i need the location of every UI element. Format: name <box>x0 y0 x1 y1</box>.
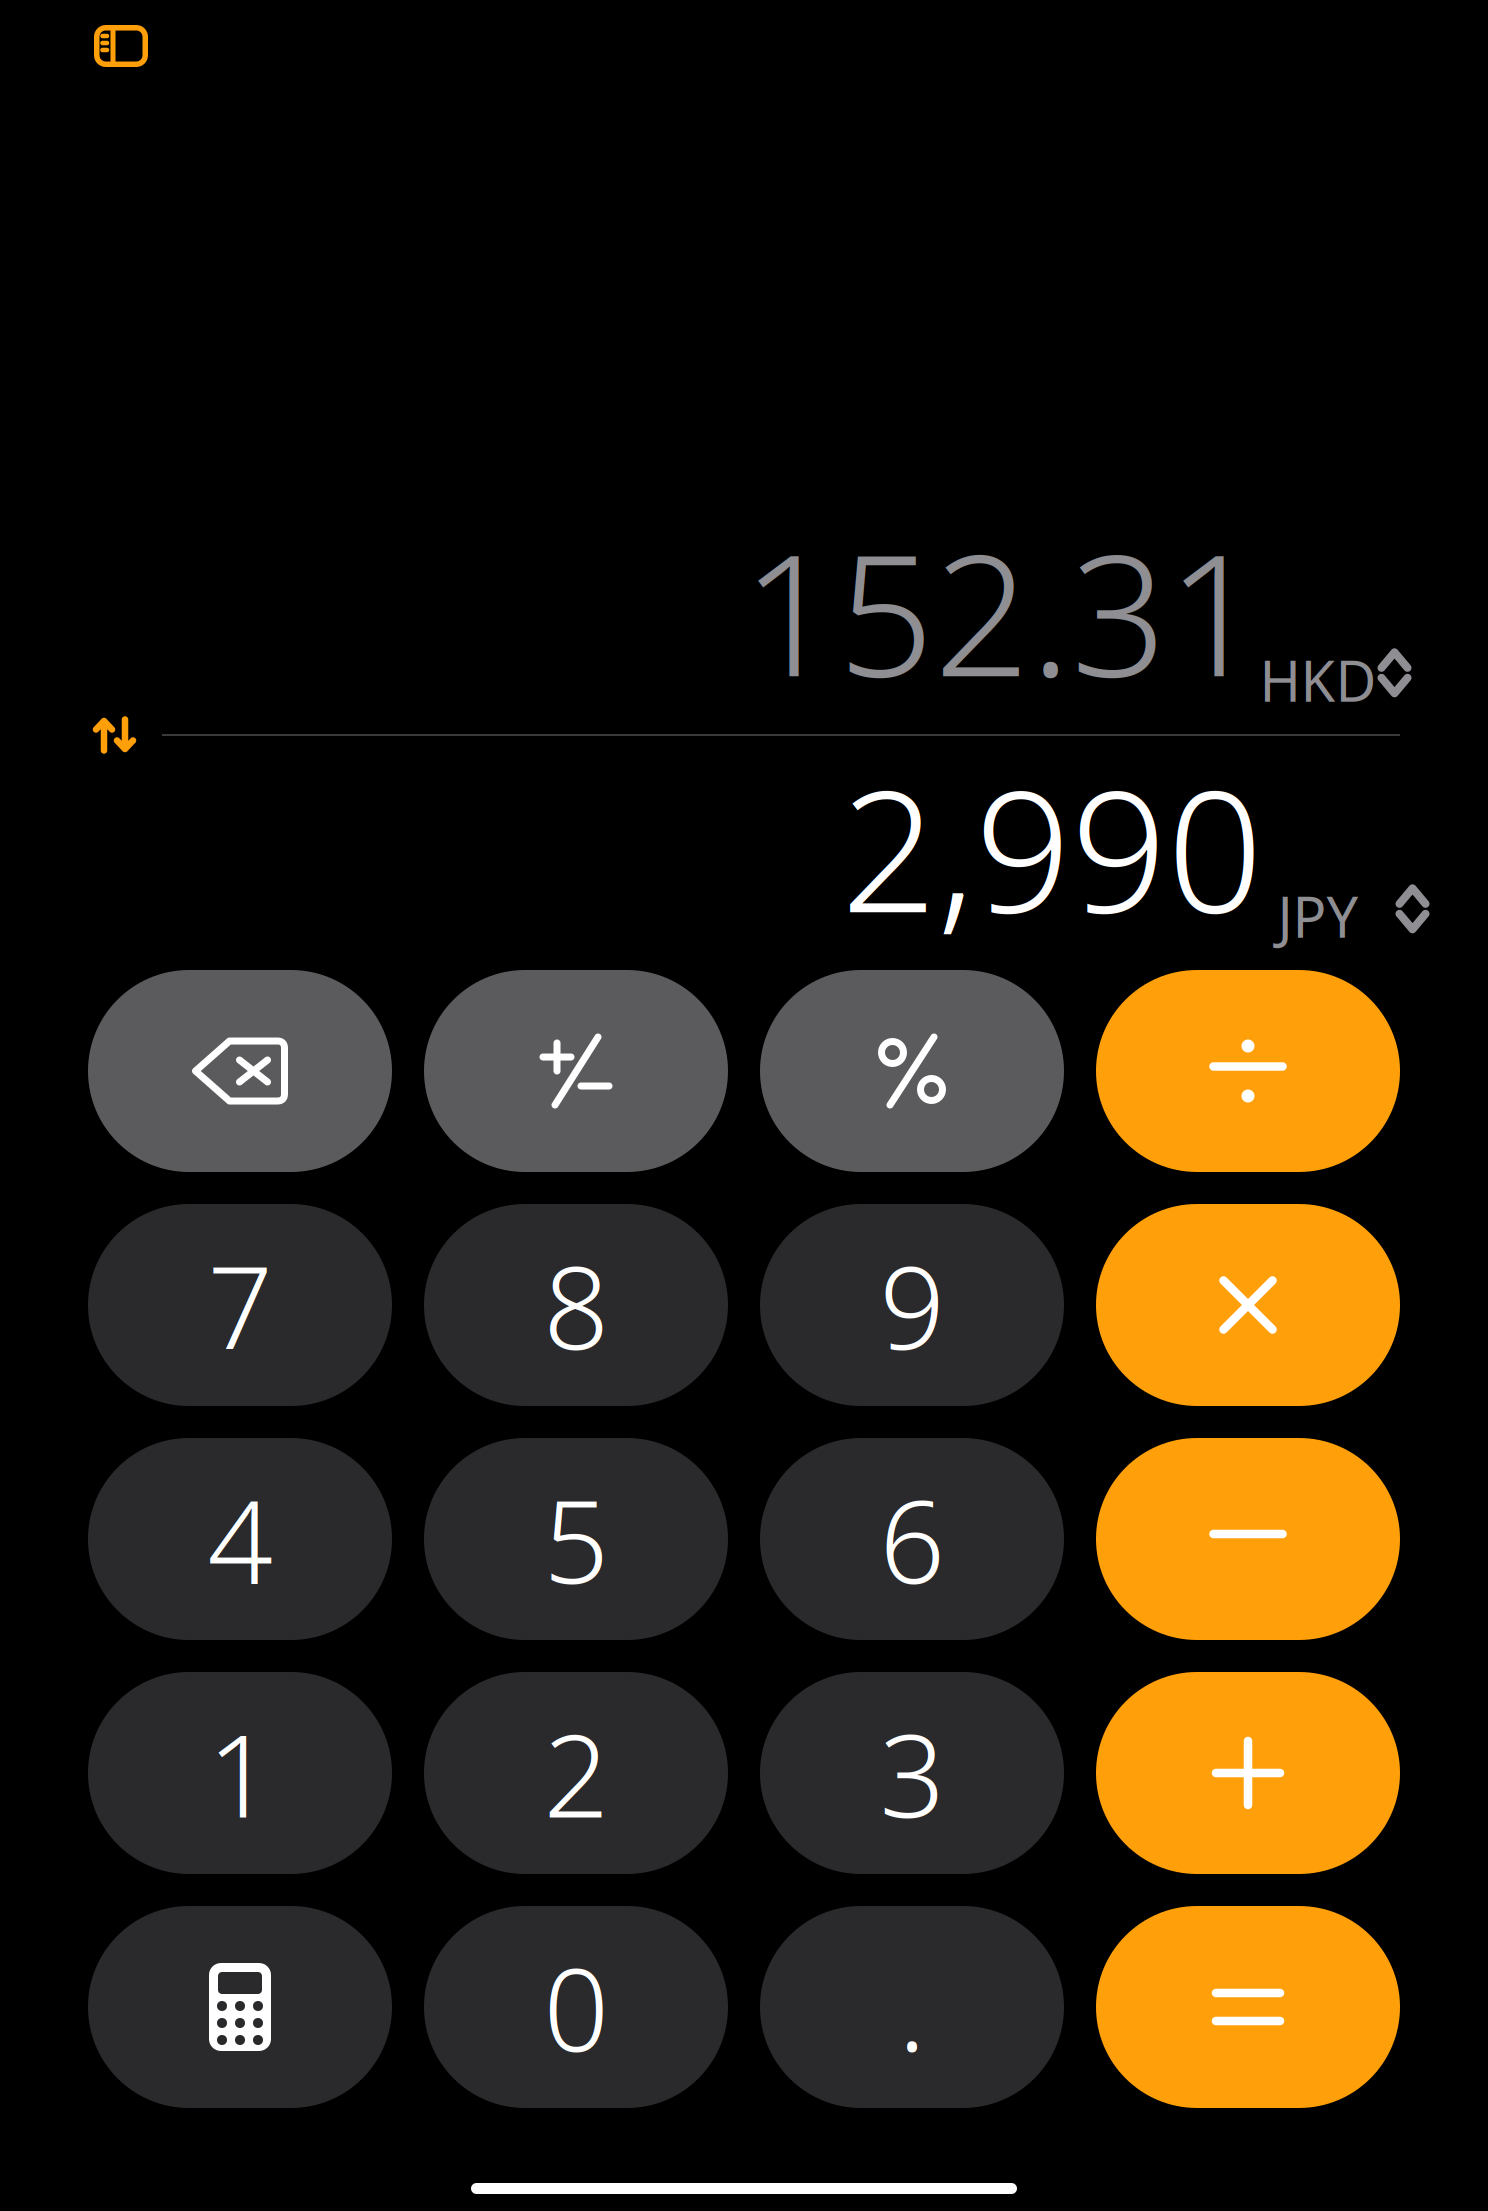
button[interactable]: 8 <box>424 1204 728 1406</box>
staticText: 4 <box>207 1463 272 1615</box>
button[interactable]: Multiply <box>1096 1204 1400 1406</box>
staticText: . <box>898 1931 926 2083</box>
staticText: 9 <box>879 1229 944 1381</box>
button[interactable]: Divide <box>1096 970 1400 1172</box>
button[interactable]: . <box>760 1906 1064 2108</box>
button[interactable]: Subtract <box>1096 1438 1400 1640</box>
button[interactable]: 7 <box>88 1204 392 1406</box>
staticText: 3 <box>879 1697 944 1849</box>
button[interactable]: 5 <box>424 1438 728 1640</box>
staticText: 1 <box>207 1697 272 1849</box>
button[interactable]: 1 <box>88 1672 392 1874</box>
staticText: 2 <box>543 1697 608 1849</box>
staticText: 7 <box>207 1229 272 1381</box>
button[interactable]: Plus minus <box>424 970 728 1172</box>
staticText: 8 <box>543 1229 608 1381</box>
button[interactable]: JPY <box>1238 850 1398 944</box>
staticText: HKD <box>1259 643 1376 717</box>
button[interactable]: Add <box>1096 1672 1400 1874</box>
staticText: 152.31 <box>742 499 1263 723</box>
button[interactable]: Delete <box>88 970 392 1172</box>
button[interactable]: 6 <box>760 1438 1064 1640</box>
button[interactable]: Equals <box>1096 1906 1400 2108</box>
staticText: 2,990 <box>841 735 1263 959</box>
button[interactable]: 0 <box>424 1906 728 2108</box>
button[interactable]: Show sidebar <box>77 7 165 85</box>
button[interactable]: 4 <box>88 1438 392 1640</box>
button[interactable]: Percent <box>760 970 1064 1172</box>
button[interactable]: Swap currencies <box>80 700 150 770</box>
button[interactable]: HKD <box>1238 614 1398 708</box>
button[interactable]: Calculator <box>88 1906 392 2108</box>
button[interactable]: 3 <box>760 1672 1064 1874</box>
button[interactable]: 2 <box>424 1672 728 1874</box>
staticText: JPY <box>1277 879 1358 953</box>
staticText: 5 <box>543 1463 608 1615</box>
staticText: 6 <box>879 1463 944 1615</box>
button[interactable]: 9 <box>760 1204 1064 1406</box>
staticText: 0 <box>543 1931 608 2083</box>
